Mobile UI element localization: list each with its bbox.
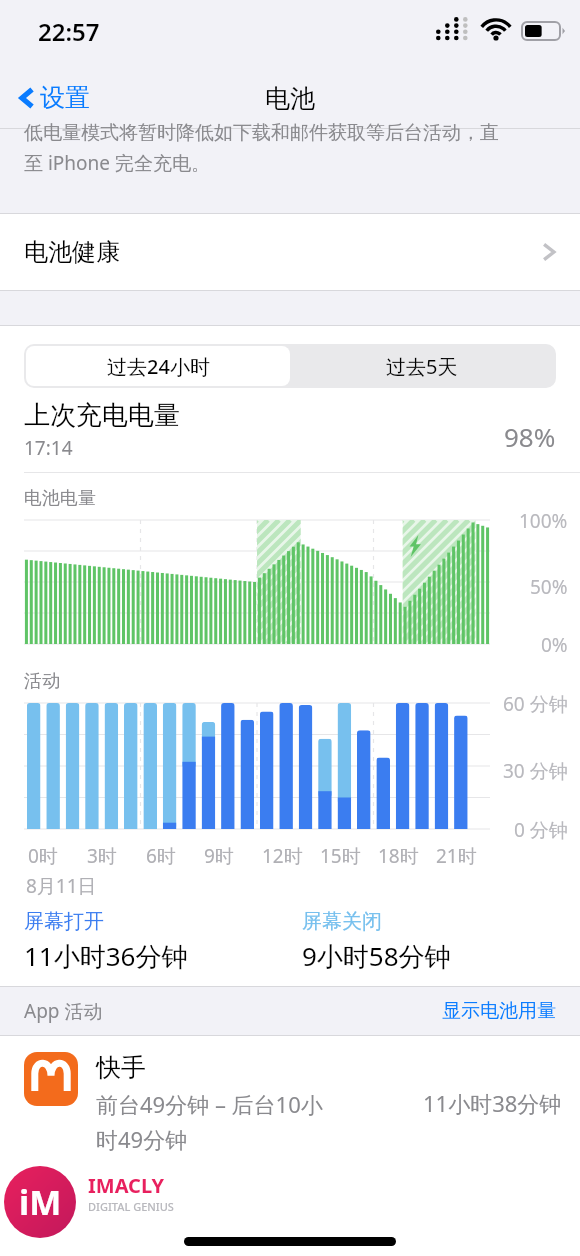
staticText: App 活动 <box>24 998 103 1024</box>
staticText: 15时 <box>320 843 361 869</box>
staticText: 100% <box>519 508 568 534</box>
staticText: 电池电量 <box>24 487 96 510</box>
staticText: 设置 <box>40 82 90 113</box>
staticText: 21时 <box>436 843 477 869</box>
staticText: 过去24小时 <box>107 353 210 380</box>
staticText: 18时 <box>378 843 419 869</box>
staticText: 屏幕打开 <box>24 909 104 934</box>
staticText: 过去5天 <box>386 353 458 380</box>
staticText: 12时 <box>262 843 303 869</box>
staticText: 0 分钟 <box>514 817 568 843</box>
staticText: 60 分钟 <box>503 691 568 717</box>
staticText: 17:14 <box>24 435 73 461</box>
staticText: 8月11日 <box>26 873 97 899</box>
staticText: 快手 <box>96 1052 146 1083</box>
staticText: iM <box>19 1179 62 1225</box>
button[interactable]: 过去5天 <box>290 346 554 386</box>
staticText: 活动 <box>24 670 60 693</box>
staticText: 9小时58分钟 <box>302 938 451 974</box>
staticText: 3时 <box>87 843 117 869</box>
button[interactable]: 设置 <box>12 76 96 119</box>
staticText: 98% <box>504 419 556 454</box>
staticText: 11小时38分钟 <box>423 1088 562 1118</box>
staticText: 电池 <box>265 83 315 114</box>
staticText: 低电量模式将暂时降低如下载和邮件获取等后台活动，直 至 iPhone 完全充电。 <box>24 121 499 175</box>
staticText: 50% <box>530 574 568 600</box>
staticText: DIGITAL GENIUS <box>88 1199 174 1214</box>
staticText: 11小时36分钟 <box>24 938 188 974</box>
staticText: 6时 <box>146 843 176 869</box>
button[interactable]: 显示电池用量 <box>442 999 556 1023</box>
button[interactable]: 电池健康 <box>0 214 580 290</box>
staticText: IMACLY <box>88 1172 165 1199</box>
button[interactable]: 快手 <box>0 1036 580 1154</box>
staticText: 屏幕关闭 <box>302 909 382 934</box>
staticText: 9时 <box>204 843 234 869</box>
staticText: 0时 <box>28 843 58 869</box>
staticText: 22:57 <box>38 15 100 48</box>
staticText: 前台49分钟 – 后台10小 时49分钟 <box>96 1089 323 1154</box>
staticText: 0% <box>541 632 568 658</box>
staticText: 电池健康 <box>24 237 120 267</box>
button[interactable]: 过去24小时 <box>26 346 290 386</box>
staticText: 上次充电电量 <box>24 399 180 432</box>
staticText: 30 分钟 <box>503 758 568 784</box>
